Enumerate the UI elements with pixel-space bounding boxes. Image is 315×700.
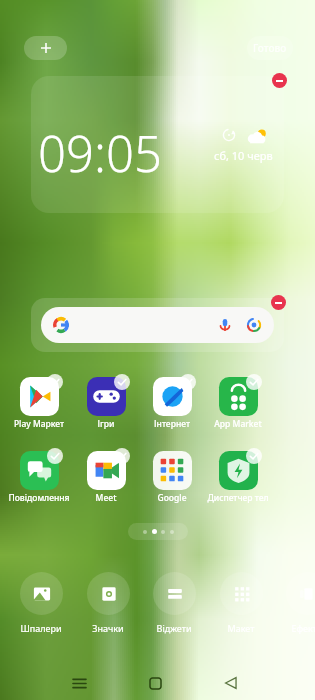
staticText: Макет — [211, 622, 271, 634]
button[interactable]: Диспетчер тел — [205, 448, 271, 504]
button[interactable] — [41, 307, 274, 343]
button[interactable]: Повідомлення — [6, 448, 72, 504]
staticText: 09:05 — [38, 120, 162, 187]
staticText: Ефекти — [277, 622, 315, 634]
button[interactable]: Add widget — [24, 36, 67, 60]
staticText: App Market — [205, 418, 271, 430]
staticText: Шпалери — [11, 622, 71, 634]
button[interactable]: Play Маркет — [6, 374, 72, 430]
staticText: Google — [139, 492, 205, 504]
staticText: Готово — [253, 41, 287, 55]
button[interactable]: 09:05 — [31, 76, 284, 213]
button[interactable]: Remove — [272, 73, 287, 88]
staticText: Ігри — [73, 418, 139, 430]
staticText: Інтернет — [139, 418, 205, 430]
button[interactable]: Значки — [78, 570, 138, 638]
staticText: Play Маркет — [6, 418, 72, 430]
button[interactable]: Ефекти — [277, 570, 315, 638]
staticText: Віджети — [144, 622, 204, 634]
button[interactable]: Ігри — [73, 374, 139, 430]
button[interactable]: Віджети — [144, 570, 204, 638]
button[interactable]: Back — [218, 670, 244, 696]
button[interactable]: Meet — [73, 448, 139, 504]
button[interactable]: Home — [142, 670, 168, 696]
staticText: Повідомлення — [6, 492, 72, 504]
button[interactable]: Remove — [271, 295, 286, 310]
button[interactable]: Інтернет — [139, 374, 205, 430]
staticText: Значки — [78, 622, 138, 634]
button[interactable]: Готово — [247, 36, 293, 60]
staticText: Meet — [73, 492, 139, 504]
button[interactable]: Google — [139, 448, 205, 504]
staticText: сб, 10 черв — [214, 148, 273, 163]
staticText: Диспетчер тел — [205, 492, 271, 504]
button[interactable]: Макет — [211, 570, 271, 638]
button[interactable]: Recents — [66, 670, 92, 696]
button[interactable]: App Market — [205, 374, 271, 430]
button[interactable]: Шпалери — [11, 570, 71, 638]
